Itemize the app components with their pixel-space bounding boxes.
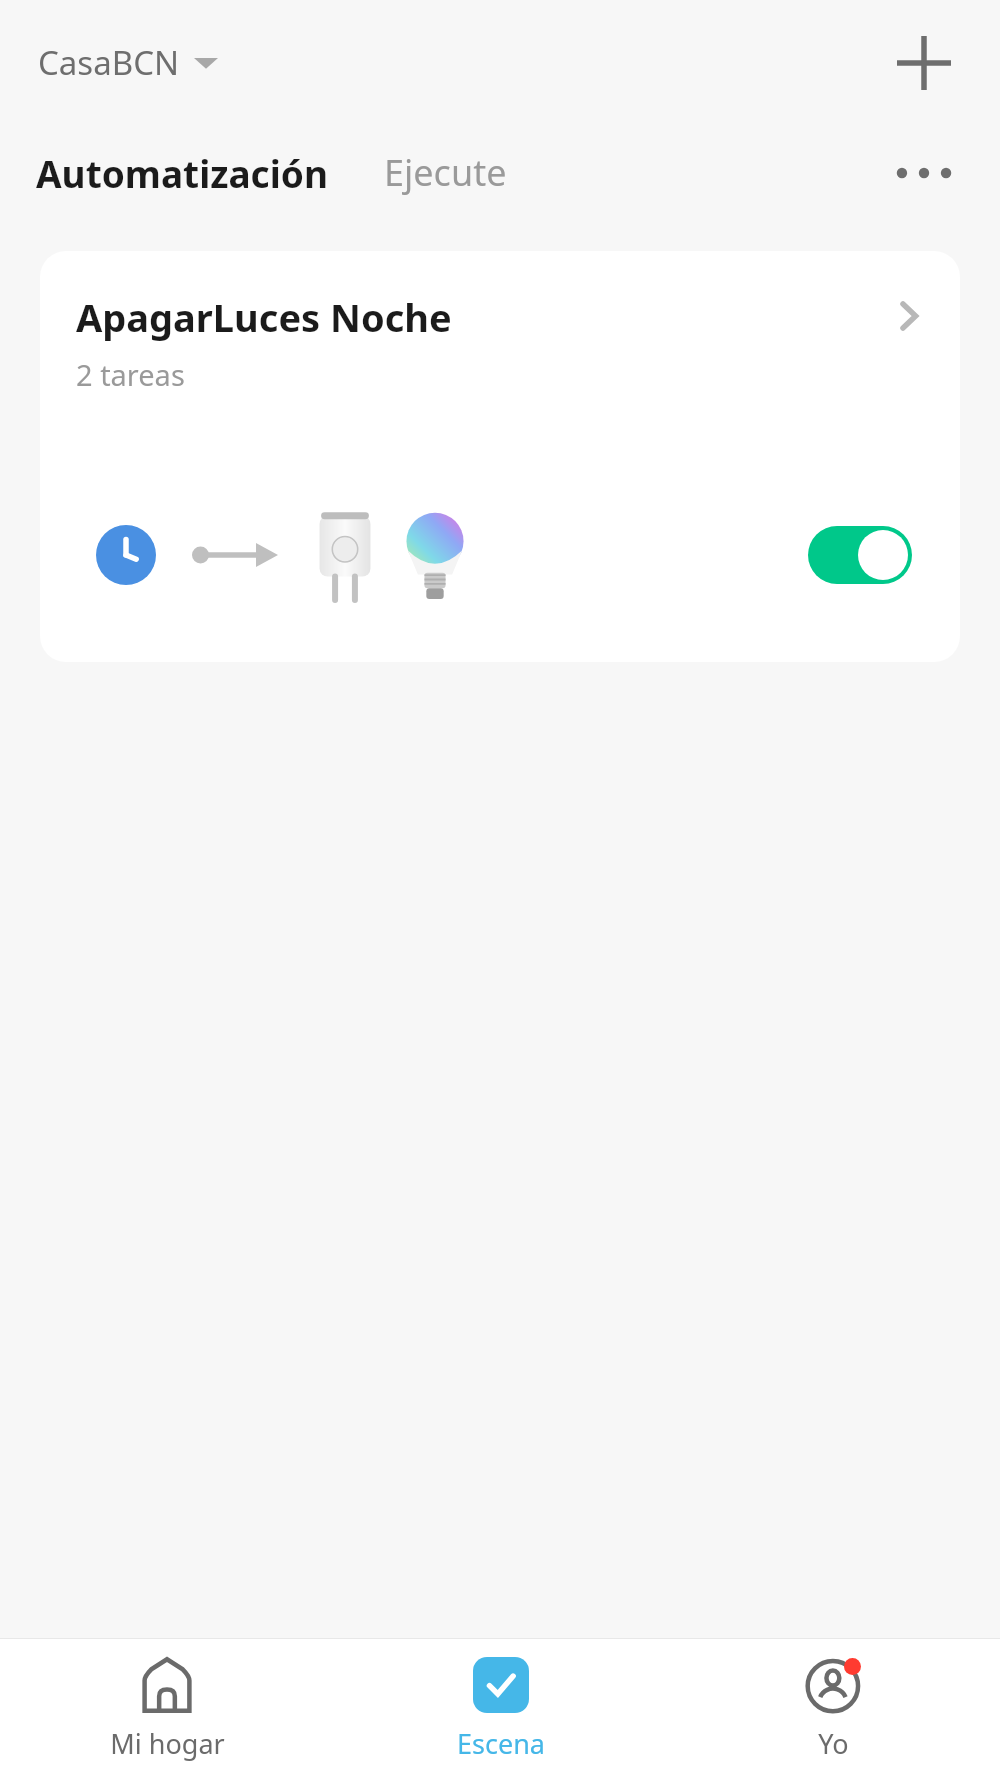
button[interactable]: Open automation bbox=[872, 279, 946, 353]
staticText: CasaBCN bbox=[38, 40, 180, 85]
button[interactable]: CasaBCN bbox=[36, 32, 220, 93]
staticText: Escena bbox=[457, 1725, 545, 1762]
button[interactable]: More options bbox=[882, 131, 966, 215]
button[interactable]: Mi hogar bbox=[0, 1639, 334, 1778]
staticText: 2 tareas bbox=[76, 355, 185, 394]
staticText: Ejecute bbox=[384, 148, 507, 197]
button[interactable]: Automatización bbox=[30, 140, 334, 206]
button[interactable]: Yo bbox=[667, 1639, 1000, 1778]
staticText: Yo bbox=[818, 1725, 849, 1762]
staticText: Mi hogar bbox=[110, 1725, 225, 1762]
staticText: ApagarLuces Noche bbox=[76, 291, 452, 343]
button[interactable]: Add bbox=[878, 17, 970, 109]
staticText: Automatización bbox=[36, 148, 328, 198]
button[interactable]: Ejecute bbox=[378, 140, 513, 205]
button[interactable]: Escena bbox=[334, 1639, 667, 1778]
button[interactable]: Toggle automation bbox=[808, 526, 912, 584]
button[interactable]: ApagarLuces Noche bbox=[40, 251, 960, 662]
